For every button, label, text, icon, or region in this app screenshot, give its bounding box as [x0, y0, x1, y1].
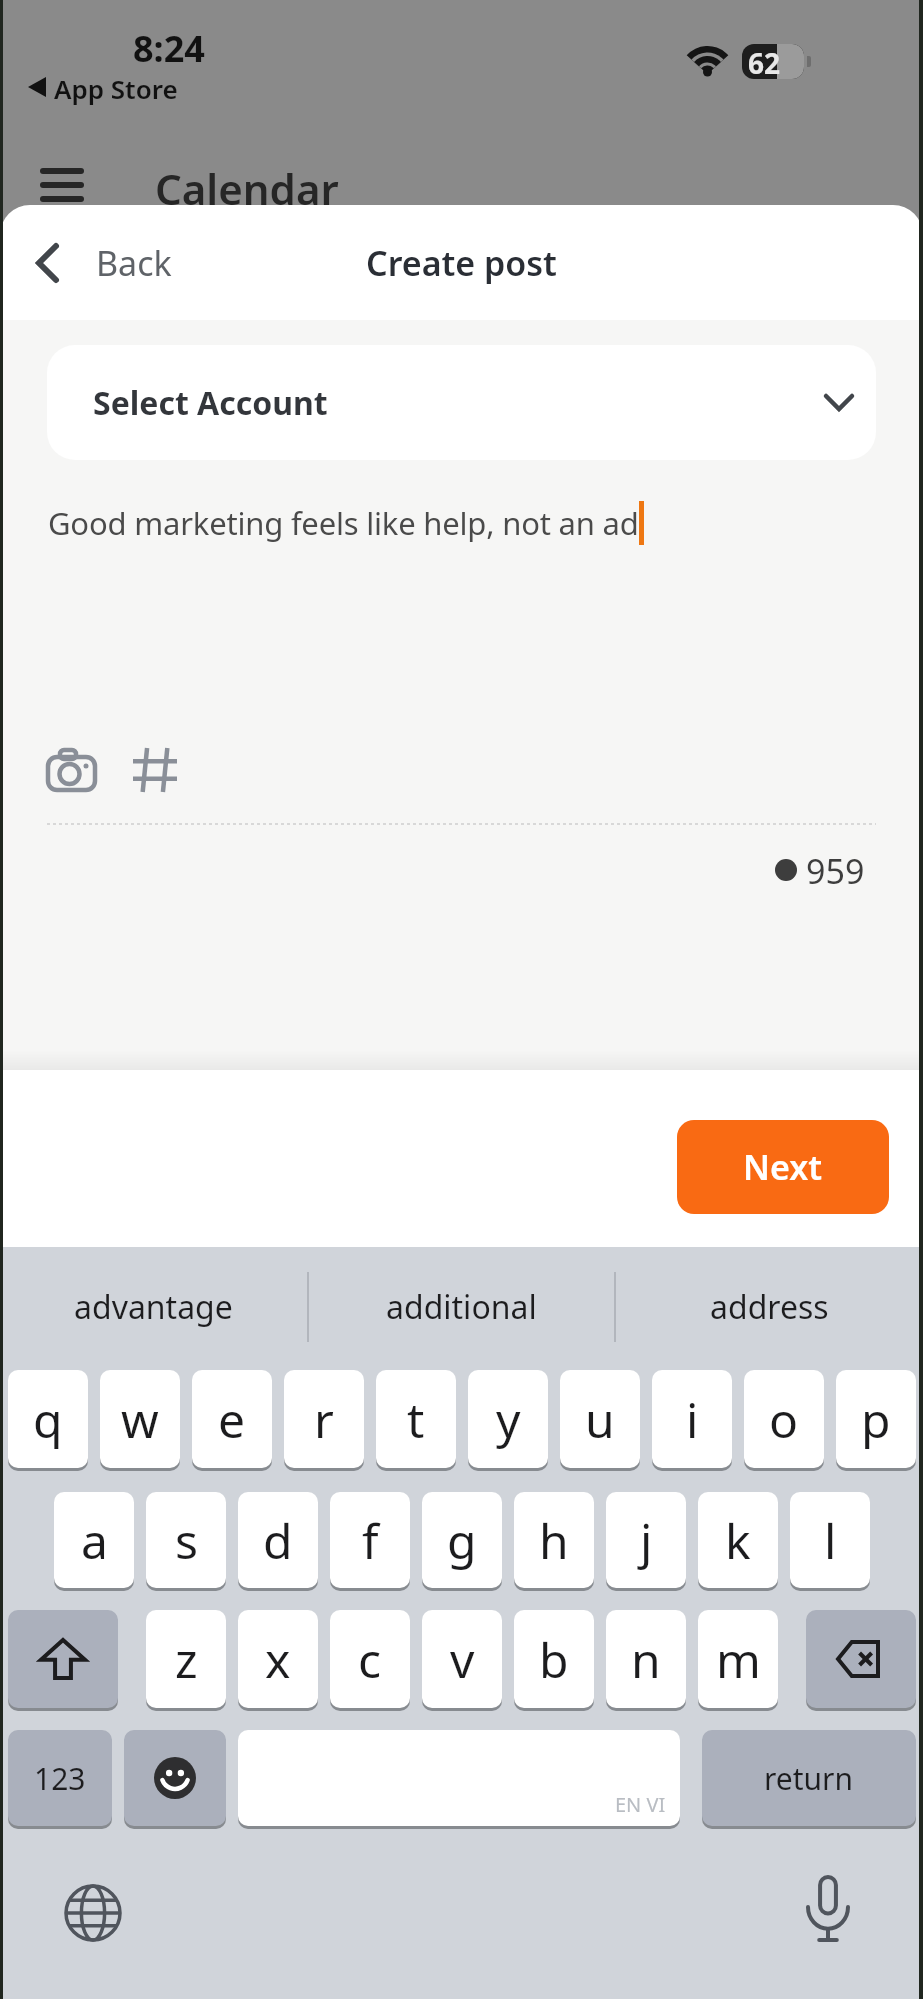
staticText: Calendar	[155, 160, 339, 217]
staticText: 123	[34, 1758, 86, 1799]
staticText: y	[496, 1387, 521, 1452]
button[interactable]: address	[615, 1247, 923, 1367]
staticText: n	[631, 1627, 661, 1692]
button[interactable]: r	[284, 1370, 364, 1468]
staticText: t	[407, 1387, 425, 1452]
button[interactable]: a	[54, 1492, 134, 1588]
button[interactable]	[64, 1884, 122, 1942]
button[interactable]: h	[514, 1492, 594, 1588]
staticText: Back	[96, 240, 172, 286]
button[interactable]: l	[790, 1492, 870, 1588]
button[interactable]: return	[702, 1730, 916, 1826]
staticText: r	[314, 1387, 334, 1452]
button[interactable]: o	[744, 1370, 824, 1468]
button[interactable]: Back	[36, 240, 172, 286]
button[interactable]: g	[422, 1492, 502, 1588]
staticText: Select Account	[93, 381, 328, 425]
button[interactable]: p	[836, 1370, 916, 1468]
staticText: g	[447, 1508, 477, 1573]
staticText: o	[769, 1387, 799, 1452]
button[interactable]	[806, 1610, 916, 1708]
button[interactable]	[48, 750, 95, 790]
button[interactable]: EN VI	[238, 1730, 680, 1826]
button[interactable]: n	[606, 1610, 686, 1708]
staticText: a	[81, 1508, 108, 1573]
staticText: 959	[806, 848, 865, 894]
staticText: c	[358, 1627, 382, 1692]
staticText: d	[263, 1508, 293, 1573]
button[interactable]: advantage	[0, 1247, 307, 1367]
button[interactable]: v	[422, 1610, 502, 1708]
button[interactable]: z	[146, 1610, 226, 1708]
button[interactable]	[133, 748, 177, 792]
button[interactable]: w	[100, 1370, 180, 1468]
staticText: address	[710, 1285, 829, 1329]
staticText: 62	[748, 44, 781, 82]
button[interactable]: m	[698, 1610, 778, 1708]
staticText: e	[218, 1387, 246, 1452]
button[interactable]: f	[330, 1492, 410, 1588]
staticText: x	[265, 1627, 291, 1692]
staticText: h	[539, 1508, 569, 1573]
staticText: EN VI	[615, 1791, 666, 1818]
staticText: u	[585, 1387, 615, 1452]
button[interactable]: i	[652, 1370, 732, 1468]
button[interactable]: 123	[8, 1730, 112, 1826]
staticText: App Store	[54, 71, 178, 106]
staticText: Next	[743, 1144, 823, 1190]
staticText: m	[716, 1627, 761, 1692]
button[interactable]: y	[468, 1370, 548, 1468]
button[interactable]	[806, 1877, 850, 1947]
button[interactable]: b	[514, 1610, 594, 1708]
staticText: p	[861, 1387, 891, 1452]
staticText: v	[450, 1627, 475, 1692]
button[interactable]: Select Account	[47, 345, 876, 460]
staticText: w	[121, 1387, 159, 1452]
button[interactable]: u	[560, 1370, 640, 1468]
staticText: advantage	[74, 1285, 233, 1329]
button[interactable]: c	[330, 1610, 410, 1708]
staticText: l	[824, 1508, 837, 1573]
staticText: q	[33, 1387, 63, 1452]
staticText: j	[640, 1508, 653, 1573]
staticText: Good marketing feels like help, not an a…	[48, 502, 639, 544]
button[interactable]: Next	[677, 1120, 889, 1214]
button[interactable]	[8, 1610, 118, 1708]
staticText: s	[175, 1508, 198, 1573]
button[interactable]: t	[376, 1370, 456, 1468]
button[interactable]: x	[238, 1610, 318, 1708]
button[interactable]	[124, 1730, 226, 1826]
button[interactable]: s	[146, 1492, 226, 1588]
button[interactable]: q	[8, 1370, 88, 1468]
staticText: b	[539, 1627, 569, 1692]
staticText: Create post	[366, 240, 557, 286]
button[interactable]: d	[238, 1492, 318, 1588]
staticText: 8:24	[133, 24, 205, 73]
button[interactable]: additional	[307, 1247, 615, 1367]
staticText: additional	[386, 1285, 537, 1329]
staticText: z	[175, 1627, 198, 1692]
staticText: return	[764, 1758, 854, 1799]
button[interactable]: j	[606, 1492, 686, 1588]
button[interactable]: e	[192, 1370, 272, 1468]
button[interactable]: k	[698, 1492, 778, 1588]
staticText: f	[362, 1508, 379, 1573]
staticText: k	[725, 1508, 751, 1573]
staticText: i	[686, 1387, 699, 1452]
